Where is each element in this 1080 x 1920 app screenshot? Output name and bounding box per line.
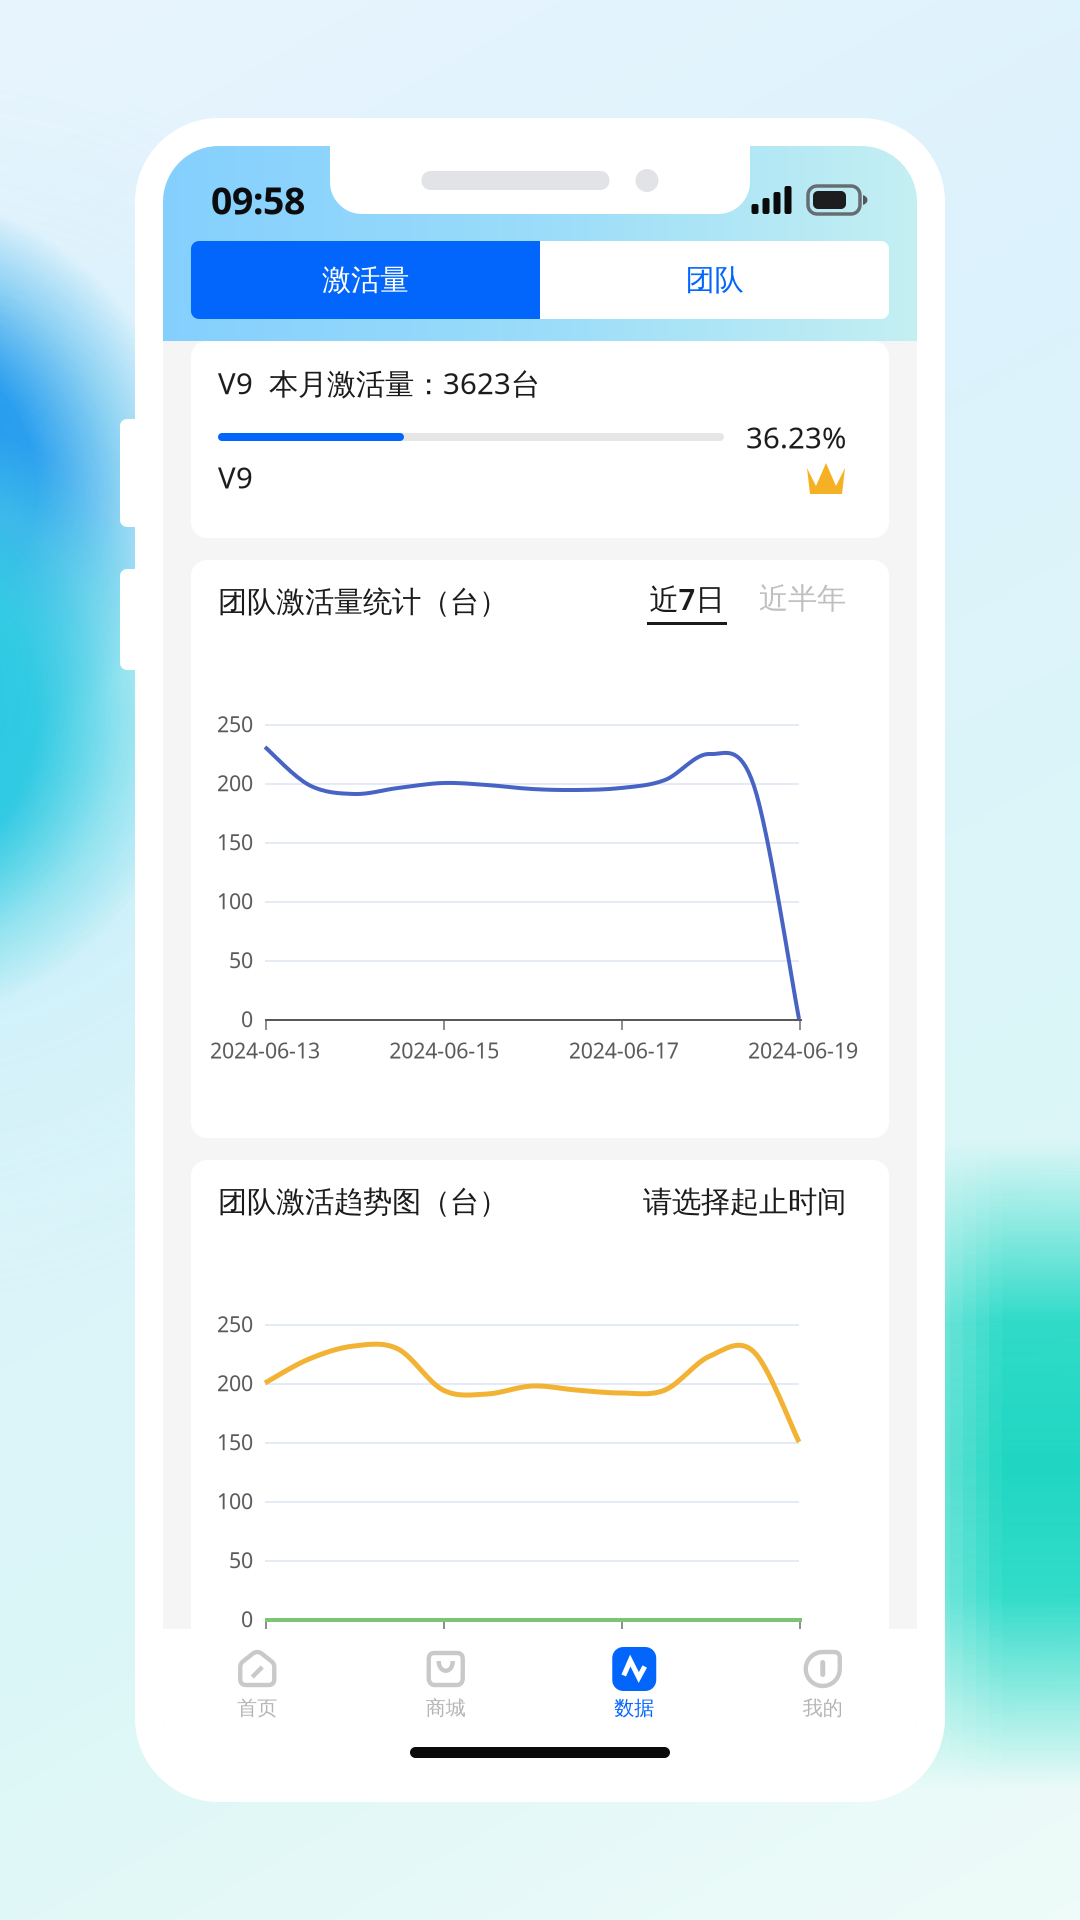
staticText: V9 bbox=[218, 457, 253, 496]
staticText: 近7日 bbox=[649, 579, 724, 618]
staticText: 09:58 bbox=[211, 175, 305, 225]
button[interactable]: 首页 bbox=[163, 1629, 351, 1741]
staticText: 200 bbox=[217, 769, 253, 797]
button[interactable]: 激活量 bbox=[191, 241, 540, 319]
staticText: 2024-06-13 bbox=[210, 1036, 320, 1064]
button[interactable]: 数据 bbox=[540, 1629, 728, 1741]
staticText: 2024-06-19 bbox=[748, 1036, 858, 1064]
button[interactable]: 我的 bbox=[728, 1629, 917, 1741]
staticText: 2024-06-15 bbox=[389, 1036, 499, 1064]
staticText: 0 bbox=[241, 1005, 253, 1033]
staticText: 团队 bbox=[685, 262, 743, 298]
staticText: 100 bbox=[217, 887, 253, 915]
staticText: 150 bbox=[217, 1428, 253, 1456]
button[interactable]: 请选择起止时间 bbox=[643, 1184, 846, 1220]
staticText: 250 bbox=[217, 710, 253, 738]
button[interactable]: 近7日 bbox=[647, 579, 727, 625]
staticText: 团队激活趋势图（台） bbox=[218, 1184, 508, 1220]
staticText: 2024-06-17 bbox=[569, 1036, 679, 1064]
staticText: V9 本月激活量：3623台 bbox=[218, 363, 540, 402]
staticText: 商城 bbox=[426, 1696, 466, 1720]
staticText: 50 bbox=[229, 946, 253, 974]
button[interactable]: 近半年 bbox=[759, 580, 846, 623]
button[interactable]: 团队 bbox=[540, 241, 889, 319]
staticText: 请选择起止时间 bbox=[643, 1184, 846, 1220]
staticText: 36.23% bbox=[746, 417, 846, 456]
staticText: 数据 bbox=[614, 1696, 654, 1720]
staticText: 激活量 bbox=[322, 262, 409, 298]
staticText: 200 bbox=[217, 1369, 253, 1397]
staticText: 50 bbox=[229, 1546, 253, 1574]
button[interactable]: 商城 bbox=[351, 1629, 540, 1741]
staticText: 我的 bbox=[803, 1696, 843, 1720]
staticText: 150 bbox=[217, 828, 253, 856]
staticText: 0 bbox=[241, 1605, 253, 1633]
staticText: 250 bbox=[217, 1310, 253, 1338]
staticText: 首页 bbox=[237, 1696, 277, 1720]
staticText: 100 bbox=[217, 1487, 253, 1515]
staticText: 近半年 bbox=[759, 580, 846, 616]
staticText: 团队激活量统计（台） bbox=[218, 584, 508, 620]
